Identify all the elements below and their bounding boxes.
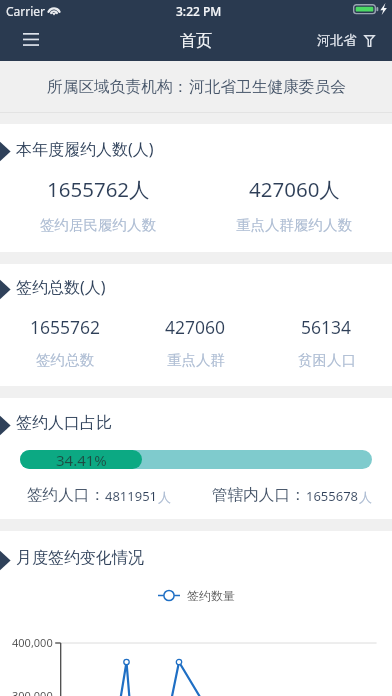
staticText: 人	[359, 489, 372, 505]
button[interactable]: 1655762人	[0, 175, 196, 234]
staticText: 427060	[165, 315, 226, 339]
staticText: 34.41%	[56, 450, 107, 469]
staticText: 427060人	[249, 175, 340, 203]
staticText: 签约数量	[187, 588, 235, 603]
staticText: 河北省卫生健康委员会	[189, 77, 346, 97]
staticText: 所属区域负责机构：	[47, 77, 189, 97]
staticText: 签约人口占比	[16, 413, 112, 433]
button[interactable]: 56134	[261, 315, 392, 369]
staticText: 管辖内人口：	[212, 485, 306, 505]
button[interactable]: 427060	[130, 315, 261, 369]
staticText: 签约居民履约人数	[40, 216, 156, 234]
staticText: 本年度履约人数(人)	[16, 138, 154, 159]
staticText: 重点人群	[167, 351, 225, 369]
staticText: Carrier	[6, 3, 46, 19]
staticText: 签约总数	[36, 351, 94, 369]
staticText: 56134	[301, 315, 352, 339]
staticText: 400,000	[12, 635, 53, 650]
button[interactable]: Menu	[0, 20, 56, 61]
staticText: 河北省	[317, 32, 357, 49]
staticText: 月度签约变化情况	[16, 548, 144, 568]
staticText: 1655678	[306, 487, 359, 505]
staticText: 1655762	[30, 315, 101, 339]
staticText: 贫困人口	[298, 351, 356, 369]
staticText: 首页	[180, 31, 212, 51]
button[interactable]: 427060人	[196, 175, 392, 234]
staticText: 人	[158, 489, 171, 505]
staticText: 重点人群履约人数	[236, 216, 352, 234]
staticText: 3:22 PM	[176, 3, 222, 19]
staticText: 签约总数(人)	[16, 276, 106, 297]
staticText: 签约人口：	[27, 485, 105, 505]
button[interactable]: 1655762	[0, 315, 130, 369]
staticText: 300,000	[12, 688, 53, 696]
staticText: 4811951	[105, 487, 158, 505]
staticText: 1655762人	[47, 175, 150, 203]
button[interactable]: 河北省	[307, 20, 392, 61]
